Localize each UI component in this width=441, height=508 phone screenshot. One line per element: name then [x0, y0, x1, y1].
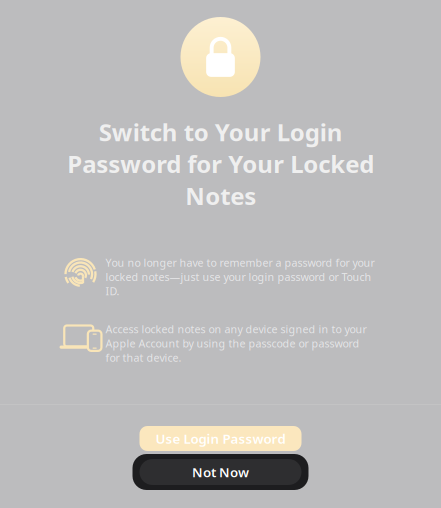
- button[interactable]: Not Now: [132, 454, 308, 490]
- staticText: Not Now: [192, 463, 249, 481]
- staticText: Switch to Your Login Password for Your L…: [67, 116, 374, 212]
- staticText: You no longer have to remember a passwor…: [105, 256, 374, 298]
- staticText: Access locked notes on any device signed…: [105, 322, 366, 365]
- staticText: Use Login Password: [155, 430, 285, 447]
- button[interactable]: Use Login Password: [139, 426, 301, 451]
